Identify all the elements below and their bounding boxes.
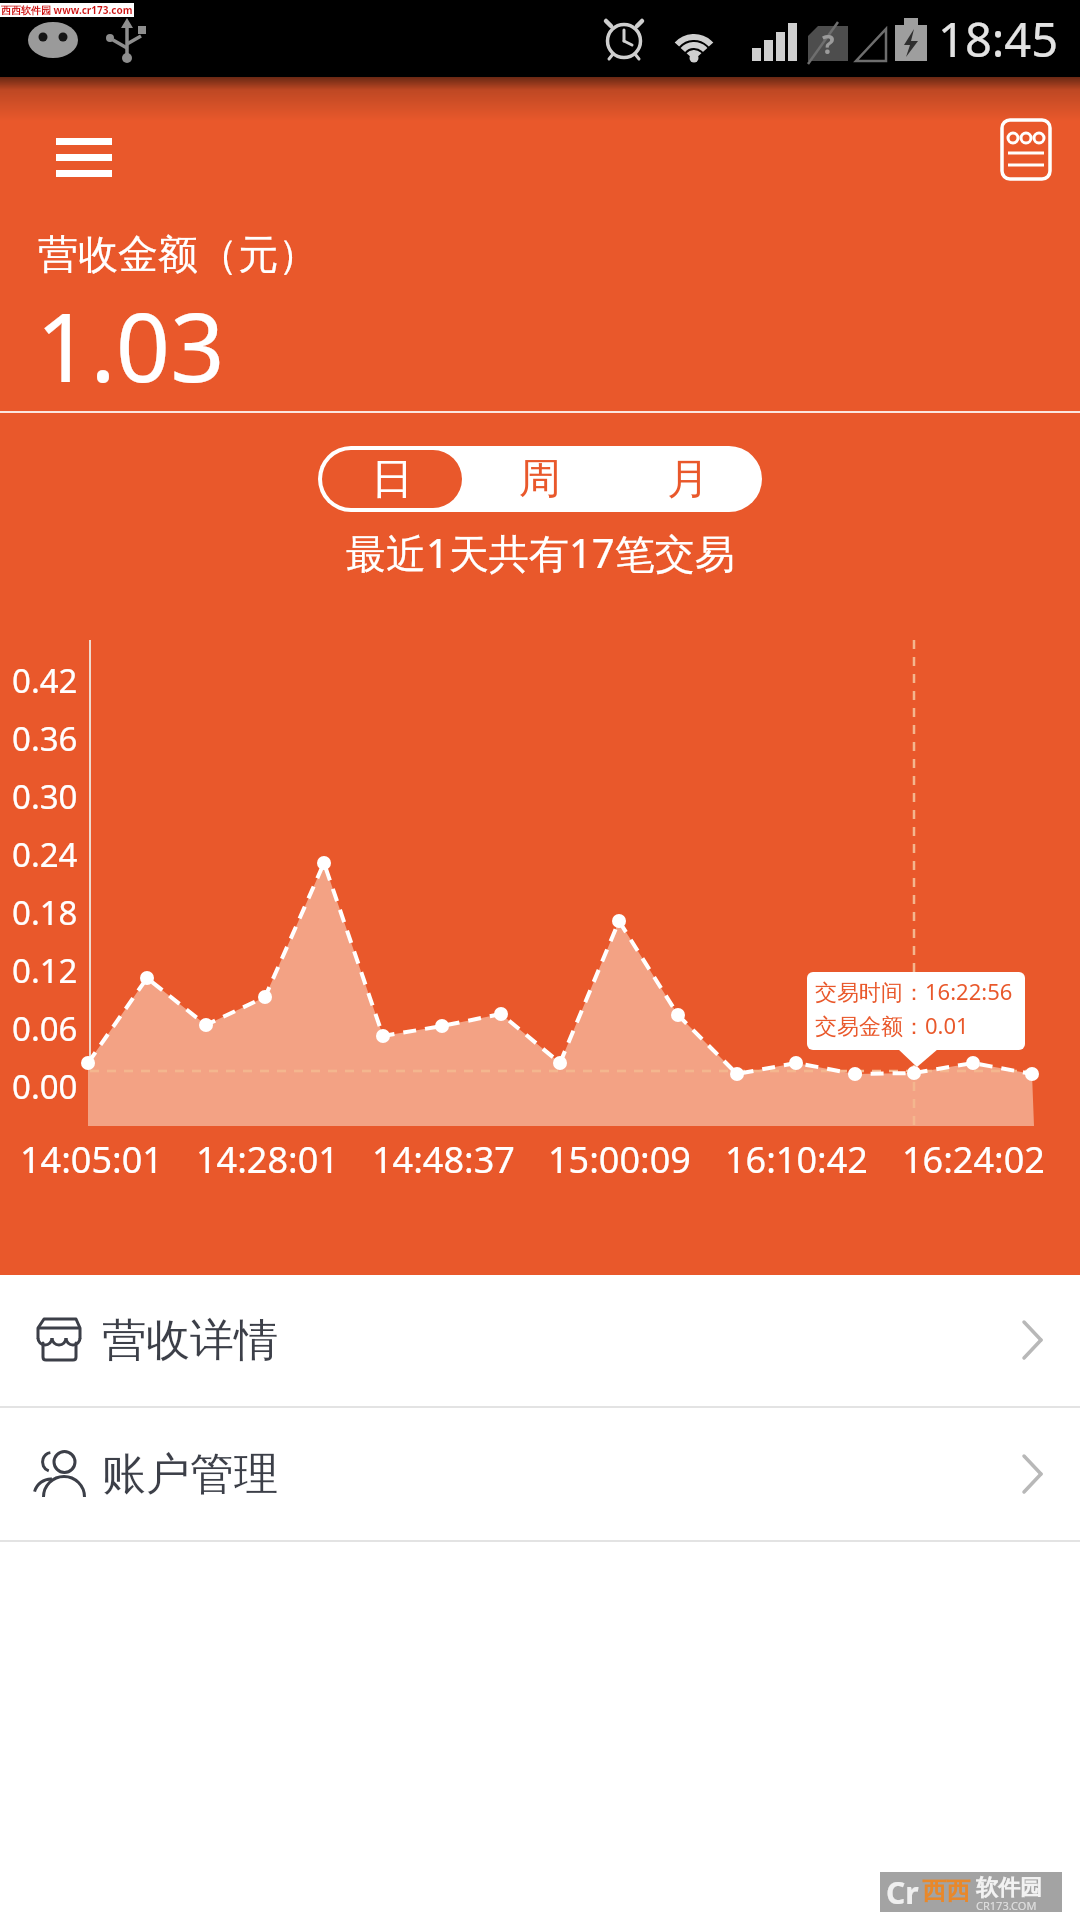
staticText: 周: [519, 453, 561, 506]
staticText: 交易时间：16:22:56: [815, 976, 1013, 1006]
staticText: 16:10:42: [725, 1135, 868, 1183]
staticText: 月: [667, 453, 709, 506]
staticText: Cr: [886, 1872, 919, 1912]
staticText: 营收金额（元）: [38, 229, 318, 279]
staticText: 账户管理: [102, 1447, 278, 1502]
staticText: 西西软件园 www.cr173.com: [1, 3, 133, 17]
button[interactable]: [994, 112, 1058, 186]
staticText: 14:05:01: [20, 1135, 163, 1183]
button[interactable]: 日: [318, 446, 466, 512]
staticText: 最近1天共有17笔交易: [346, 525, 735, 577]
staticText: 0.18: [12, 890, 78, 935]
staticText: 日: [371, 453, 413, 506]
staticText: 0.06: [12, 1006, 78, 1051]
staticText: 营收详情: [102, 1313, 278, 1368]
staticText: CR173.COM: [976, 1898, 1037, 1913]
button[interactable]: 营收详情: [0, 1275, 1080, 1406]
staticText: 16:24:02: [902, 1135, 1045, 1183]
staticText: 14:48:37: [372, 1135, 515, 1183]
staticText: ?: [822, 26, 835, 60]
staticText: 0.12: [12, 948, 78, 993]
staticText: 西西: [922, 1876, 970, 1906]
staticText: 0.00: [12, 1064, 78, 1109]
staticText: 0.24: [12, 832, 78, 877]
staticText: 1.03: [36, 280, 225, 409]
button[interactable]: 周: [466, 446, 614, 512]
staticText: 18:45: [938, 7, 1059, 71]
button[interactable]: 账户管理: [0, 1408, 1080, 1540]
staticText: 0.42: [12, 658, 78, 703]
staticText: 0.36: [12, 716, 78, 761]
staticText: 交易金额：0.01: [815, 1010, 969, 1040]
button[interactable]: [44, 124, 124, 188]
button[interactable]: 月: [614, 446, 762, 512]
staticText: 15:00:09: [548, 1135, 691, 1183]
staticText: 软件园: [976, 1874, 1042, 1902]
staticText: 14:28:01: [196, 1135, 339, 1183]
staticText: 0.30: [12, 774, 78, 819]
